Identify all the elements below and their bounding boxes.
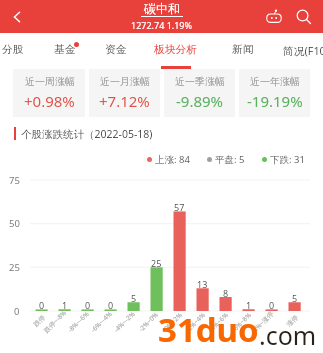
staticText: 上涨: 84	[155, 153, 190, 166]
staticText: 新闻	[232, 43, 254, 57]
button[interactable]: 近一周涨幅	[13, 69, 85, 117]
button[interactable]: 资金	[84, 36, 148, 64]
staticText: .com	[259, 318, 317, 352]
staticText: -2%~0%	[136, 309, 160, 333]
staticText: -19.19%	[247, 91, 303, 111]
staticText: 跌停~-8%	[42, 308, 68, 335]
staticText: 基金	[54, 43, 76, 57]
staticText: 4%~6%	[208, 310, 230, 332]
staticText: 0	[108, 299, 114, 311]
button[interactable]: 近一季涨幅	[164, 69, 235, 117]
staticText: 57	[174, 201, 185, 213]
staticText: 下跌: 31	[270, 153, 305, 166]
staticText: +7.12%	[99, 91, 150, 111]
staticText: 0	[14, 305, 20, 318]
staticText: 近一周涨幅	[25, 75, 75, 88]
button[interactable]: 近一年涨幅	[239, 69, 310, 117]
staticText: 1272.74 1.19%	[131, 19, 192, 31]
staticText: -4%~-2%	[112, 309, 137, 334]
staticText: -6%~-4%	[89, 309, 114, 334]
staticText: 近一月涨幅	[100, 75, 150, 88]
staticText: 0%~2%	[162, 310, 184, 332]
staticText: +0.98%	[24, 91, 75, 111]
button[interactable]: 简况(F10	[272, 36, 323, 64]
staticText: 1	[246, 299, 252, 311]
staticText: 板块分析	[154, 43, 198, 57]
staticText: 平盘: 5	[215, 153, 245, 166]
button[interactable]: AI assistant	[259, 2, 289, 32]
button[interactable]: 分股	[0, 36, 45, 64]
staticText: 50	[9, 217, 20, 230]
staticText: 近一季涨幅	[175, 75, 225, 88]
staticText: 8%~涨停	[251, 309, 275, 334]
staticText: 碳中和	[144, 1, 180, 16]
button[interactable]: 基金	[33, 36, 97, 64]
staticText: 资金	[105, 43, 127, 57]
staticText: 1	[62, 299, 68, 311]
staticText: 5	[292, 292, 298, 304]
staticText: 25	[151, 257, 162, 269]
staticText: -9.89%	[176, 91, 224, 111]
staticText: 跌停	[32, 314, 47, 328]
button[interactable]: 新闻	[211, 36, 275, 64]
staticText: 0	[85, 299, 91, 311]
staticText: 个股涨跌统计（2022-05-18)	[21, 127, 153, 141]
button[interactable]: 近一月涨幅	[89, 69, 160, 117]
staticText: 2%~4%	[185, 310, 207, 332]
button[interactable]: Search	[289, 2, 319, 32]
staticText: 0	[269, 299, 275, 311]
staticText: 简况(F10	[283, 43, 323, 58]
staticText: 8	[223, 287, 229, 299]
staticText: 31duo	[158, 307, 259, 352]
button[interactable]: Back	[0, 0, 33, 33]
staticText: 75	[9, 174, 20, 187]
staticText: 0	[39, 299, 45, 311]
staticText: 13	[197, 278, 208, 290]
staticText: 近一年涨幅	[250, 75, 300, 88]
staticText: 6%~8%	[231, 310, 253, 332]
staticText: -8%~-6%	[66, 309, 91, 334]
staticText: 25	[9, 261, 20, 274]
staticText: 5	[131, 292, 137, 304]
staticText: 分股	[2, 43, 24, 57]
staticText: 涨停	[285, 314, 300, 328]
button[interactable]: 板块分析	[144, 36, 208, 64]
